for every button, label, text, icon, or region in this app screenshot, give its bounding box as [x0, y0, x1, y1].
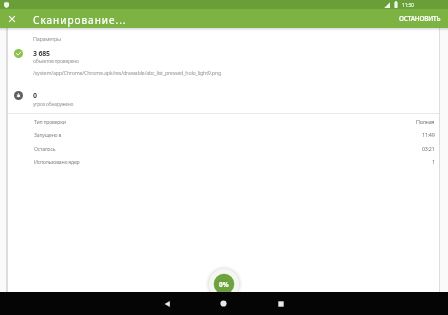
staticText: 1 — [432, 158, 435, 165]
button[interactable] — [216, 296, 231, 311]
staticText: Тип проверки — [34, 118, 66, 125]
staticText: объектов проверено — [33, 58, 79, 65]
button[interactable] — [273, 296, 288, 311]
button[interactable]: 0% — [204, 264, 244, 304]
button[interactable] — [5, 12, 19, 26]
staticText: угроз обнаружено — [33, 101, 74, 108]
staticText: Осталось — [34, 145, 56, 152]
staticText: Запущено в — [34, 131, 62, 138]
button[interactable]: Использовано ядер — [8, 155, 439, 168]
button[interactable]: ОСТАНОВИТЬ — [396, 11, 444, 26]
staticText: /system/app/Chrome/Chrome.apk/res/drawab… — [33, 69, 222, 76]
staticText: Использовано ядер — [34, 158, 80, 165]
staticText: ОСТАНОВИТЬ — [399, 14, 441, 23]
staticText: 11:50 — [402, 2, 414, 9]
button[interactable]: Тип проверки — [8, 115, 439, 128]
staticText: 03:21 — [422, 145, 435, 152]
staticText: Полная — [416, 118, 435, 125]
staticText: 0% — [219, 280, 229, 289]
button[interactable]: Осталось — [8, 142, 439, 155]
button[interactable]: Запущено в — [8, 128, 439, 141]
button[interactable] — [159, 296, 174, 311]
staticText: 3 685 — [33, 49, 50, 59]
staticText: Параметры — [33, 35, 61, 42]
staticText: 0 — [33, 91, 38, 101]
staticText: 11:49 — [422, 131, 435, 138]
staticText: Сканирование... — [33, 13, 127, 27]
